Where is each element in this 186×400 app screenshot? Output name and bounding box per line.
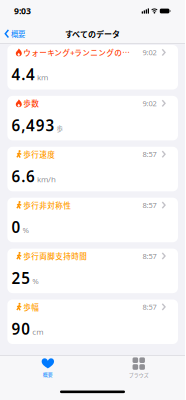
staticText: 歩行非対称性 — [23, 200, 71, 211]
staticText: km — [37, 72, 48, 83]
button[interactable]: 概要 — [0, 27, 25, 38]
staticText: 歩行両脚支持時間 — [23, 250, 87, 261]
staticText: ウォーキング+ランニングの距離 — [23, 47, 135, 58]
staticText: 9:02 — [143, 47, 157, 57]
staticText: % — [32, 275, 39, 286]
staticText: 歩数 — [23, 98, 39, 109]
staticText: すべてのデータ — [65, 28, 120, 39]
button[interactable]: 歩行両脚支持時間 — [7, 249, 178, 293]
staticText: 90 — [11, 319, 30, 339]
button[interactable]: ブラウズ — [92, 356, 185, 378]
button[interactable]: ウォーキング+ランニングの距離 — [7, 45, 178, 89]
staticText: 歩 — [57, 124, 63, 133]
staticText: 0 — [11, 217, 20, 237]
staticText: 9:03 — [14, 5, 31, 17]
staticText: 6,493 — [11, 115, 55, 136]
staticText: 概要 — [11, 28, 25, 39]
staticText: 歩幅 — [23, 301, 39, 312]
staticText: 概要 — [43, 371, 53, 378]
staticText: 8:57 — [143, 200, 157, 210]
staticText: 歩行速度 — [23, 149, 55, 160]
staticText: % — [22, 225, 29, 235]
staticText: km/h — [37, 174, 56, 184]
staticText: cm — [32, 326, 43, 337]
staticText: 8:57 — [143, 149, 157, 159]
button[interactable]: 歩数 — [7, 96, 178, 140]
staticText: 8:57 — [143, 251, 157, 261]
staticText: ブラウズ — [129, 371, 149, 378]
staticText: 4.4 — [11, 64, 35, 85]
button[interactable]: 歩行非対称性 — [7, 198, 178, 242]
button[interactable]: 歩行速度 — [7, 147, 178, 191]
button[interactable]: 歩幅 — [7, 299, 178, 344]
staticText: 9:02 — [143, 98, 157, 108]
staticText: 6.6 — [11, 166, 35, 187]
button[interactable]: 概要 — [0, 357, 92, 378]
staticText: 8:57 — [143, 302, 157, 312]
staticText: 25 — [11, 268, 30, 288]
